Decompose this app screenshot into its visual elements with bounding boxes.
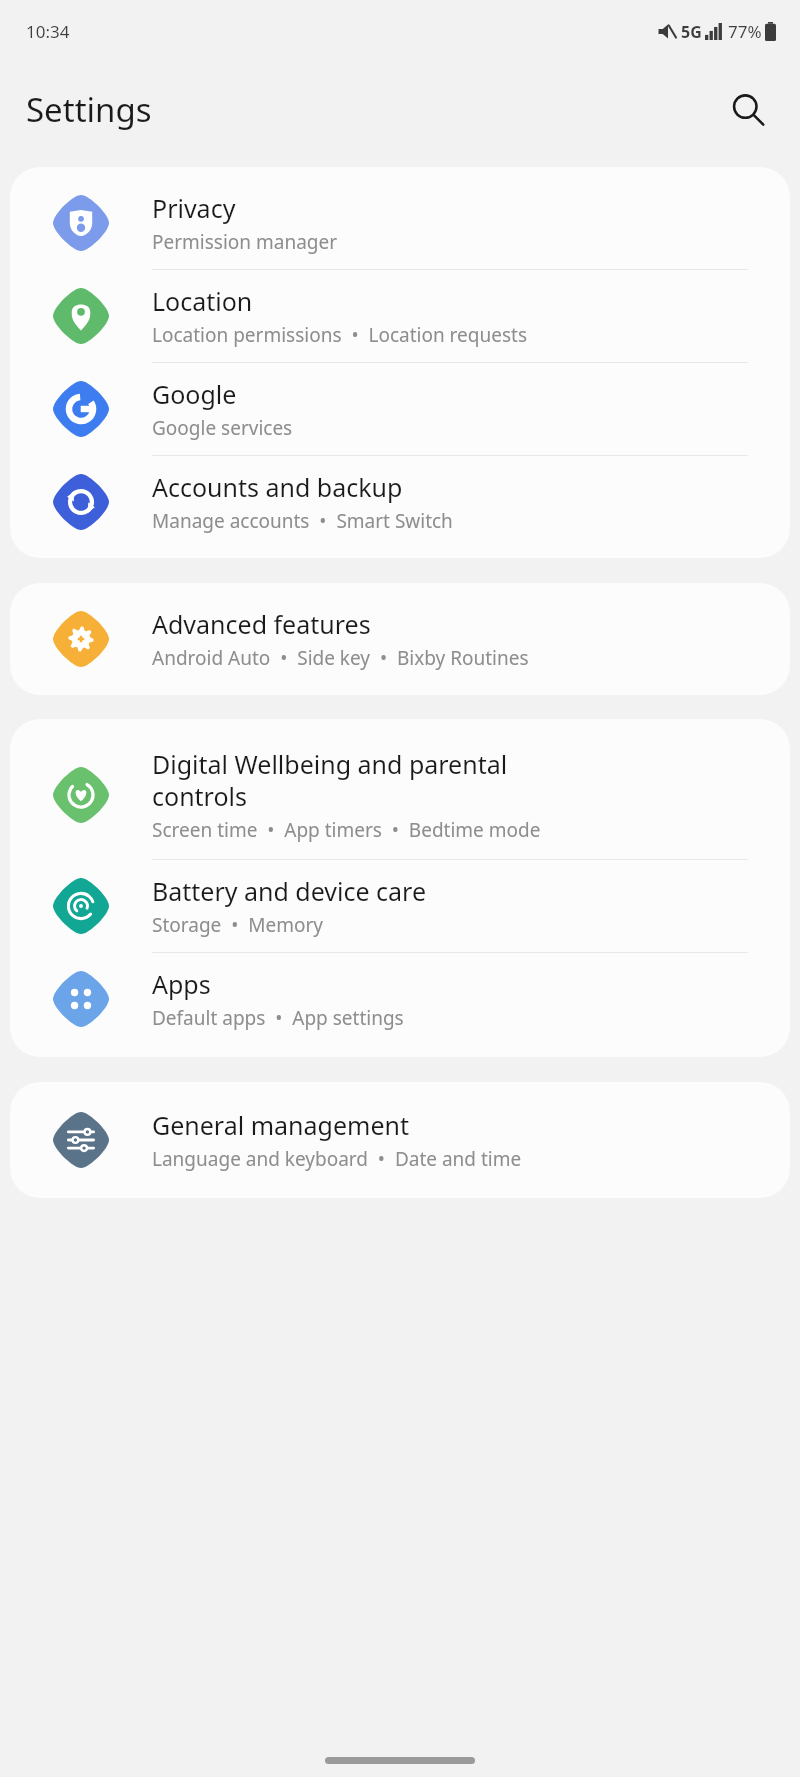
staticText: Language and keyboard • Date and time <box>152 1146 522 1172</box>
staticText: Storage • Memory <box>152 912 323 938</box>
staticText: 77% <box>728 20 762 43</box>
button[interactable]: General management <box>10 1094 790 1186</box>
button[interactable]: Location <box>10 270 790 363</box>
staticText: Google services <box>152 415 293 441</box>
button[interactable]: Digital Wellbeing and parental controls <box>10 731 790 860</box>
staticText: Android Auto • Side key • Bixby Routines <box>152 645 529 671</box>
staticText: Settings <box>26 87 152 132</box>
staticText: Screen time • App timers • Bedtime mode <box>152 817 541 843</box>
staticText: Manage accounts • Smart Switch <box>152 508 453 534</box>
staticText: Apps <box>152 967 211 1001</box>
button[interactable]: Accounts and backup <box>10 456 790 548</box>
button[interactable]: Search <box>722 84 774 136</box>
staticText: General management <box>152 1108 409 1142</box>
staticText: Location <box>152 284 253 318</box>
button[interactable]: Privacy <box>10 177 790 270</box>
staticText: 5G <box>681 21 702 43</box>
button[interactable]: Advanced features <box>10 593 790 685</box>
staticText: 10:34 <box>26 20 70 43</box>
staticText: Accounts and backup <box>152 470 403 504</box>
staticText: Permission manager <box>152 229 338 255</box>
staticText: Default apps • App settings <box>152 1005 404 1031</box>
staticText: Battery and device care <box>152 874 427 908</box>
staticText: Google <box>152 377 237 411</box>
staticText: Location permissions • Location requests <box>152 322 527 348</box>
staticText: Digital Wellbeing and parental controls <box>152 747 508 813</box>
staticText: Privacy <box>152 191 236 225</box>
button[interactable]: Google <box>10 363 790 456</box>
button[interactable]: Apps <box>10 953 790 1045</box>
staticText: Advanced features <box>152 607 371 641</box>
button[interactable]: Battery and device care <box>10 860 790 953</box>
